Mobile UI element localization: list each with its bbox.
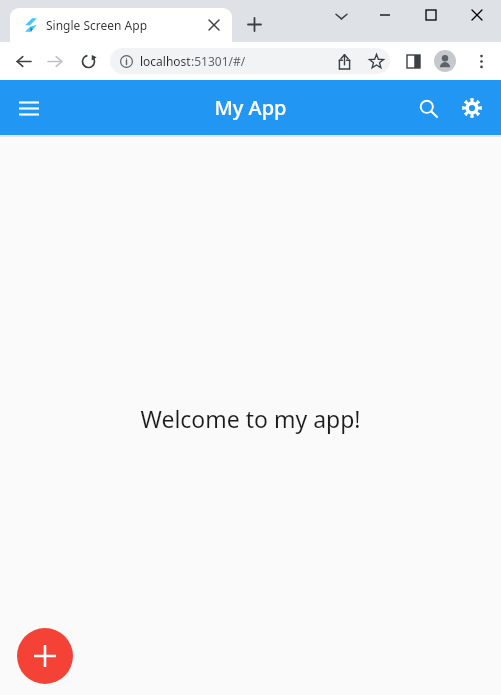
staticText: Welcome to my app! — [140, 403, 361, 434]
button[interactable]: Side panel — [400, 48, 426, 74]
button[interactable]: Settings — [451, 87, 493, 129]
button[interactable]: Menu — [468, 48, 494, 74]
button[interactable]: Profile — [434, 50, 456, 72]
button[interactable]: Single Screen App — [10, 8, 232, 42]
button[interactable]: Reload — [75, 48, 101, 74]
button[interactable]: Share — [331, 48, 357, 74]
button[interactable]: New tab — [240, 10, 268, 38]
button[interactable]: Open navigation menu — [8, 87, 50, 129]
button[interactable]: Close tab — [204, 15, 224, 35]
button[interactable]: Maximize — [417, 0, 445, 30]
button[interactable]: Bookmark — [363, 48, 389, 74]
button[interactable]: Add — [17, 628, 73, 684]
button[interactable]: Forward — [42, 48, 68, 74]
button[interactable]: localhost — [110, 48, 390, 74]
button[interactable]: Search tabs — [330, 5, 352, 27]
button[interactable]: Back — [10, 48, 36, 74]
button[interactable]: Close — [463, 0, 491, 30]
staticText: :51301/#/ — [191, 53, 246, 69]
staticText: My App — [214, 94, 287, 121]
button[interactable]: Minimize — [371, 0, 399, 30]
staticText: Single Screen App — [46, 17, 148, 33]
staticText: localhost — [140, 53, 191, 69]
button[interactable]: Search — [407, 87, 449, 129]
